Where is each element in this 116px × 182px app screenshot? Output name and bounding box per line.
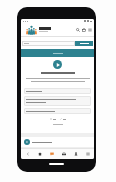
button[interactable]	[22, 41, 75, 46]
button[interactable]: Cart	[81, 27, 86, 32]
button[interactable]: Search	[75, 27, 80, 32]
button[interactable]: More	[82, 149, 93, 159]
button[interactable]: Profile	[70, 149, 81, 159]
button[interactable]	[21, 49, 94, 57]
button[interactable]	[21, 137, 94, 147]
button[interactable]: Groups	[58, 149, 69, 159]
button[interactable]	[75, 41, 93, 46]
button[interactable]	[24, 96, 91, 106]
button[interactable]: Play video	[53, 60, 62, 69]
button[interactable]	[24, 108, 91, 114]
button[interactable]: Back	[22, 149, 33, 159]
button[interactable]: Home	[34, 149, 45, 159]
button[interactable]: Messages	[46, 149, 57, 159]
button[interactable]: Menu	[87, 27, 92, 32]
button[interactable]	[24, 88, 91, 94]
